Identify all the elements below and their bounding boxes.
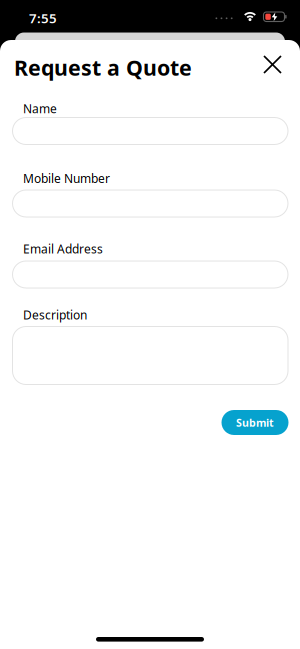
button[interactable]: Mobile Number text field xyxy=(12,190,288,217)
button[interactable]: Close xyxy=(258,50,286,78)
button[interactable]: Submit xyxy=(221,410,288,435)
staticText: Name xyxy=(23,101,57,116)
staticText: Mobile Number xyxy=(23,170,110,186)
staticText: 7:55 xyxy=(29,9,57,27)
staticText: Submit xyxy=(236,415,274,430)
button[interactable]: Description text area xyxy=(12,326,288,384)
staticText: Email Address xyxy=(23,241,103,257)
button[interactable]: Email Address text field xyxy=(12,261,288,288)
staticText: Request a Quote xyxy=(14,53,192,81)
staticText: Description xyxy=(23,307,87,323)
